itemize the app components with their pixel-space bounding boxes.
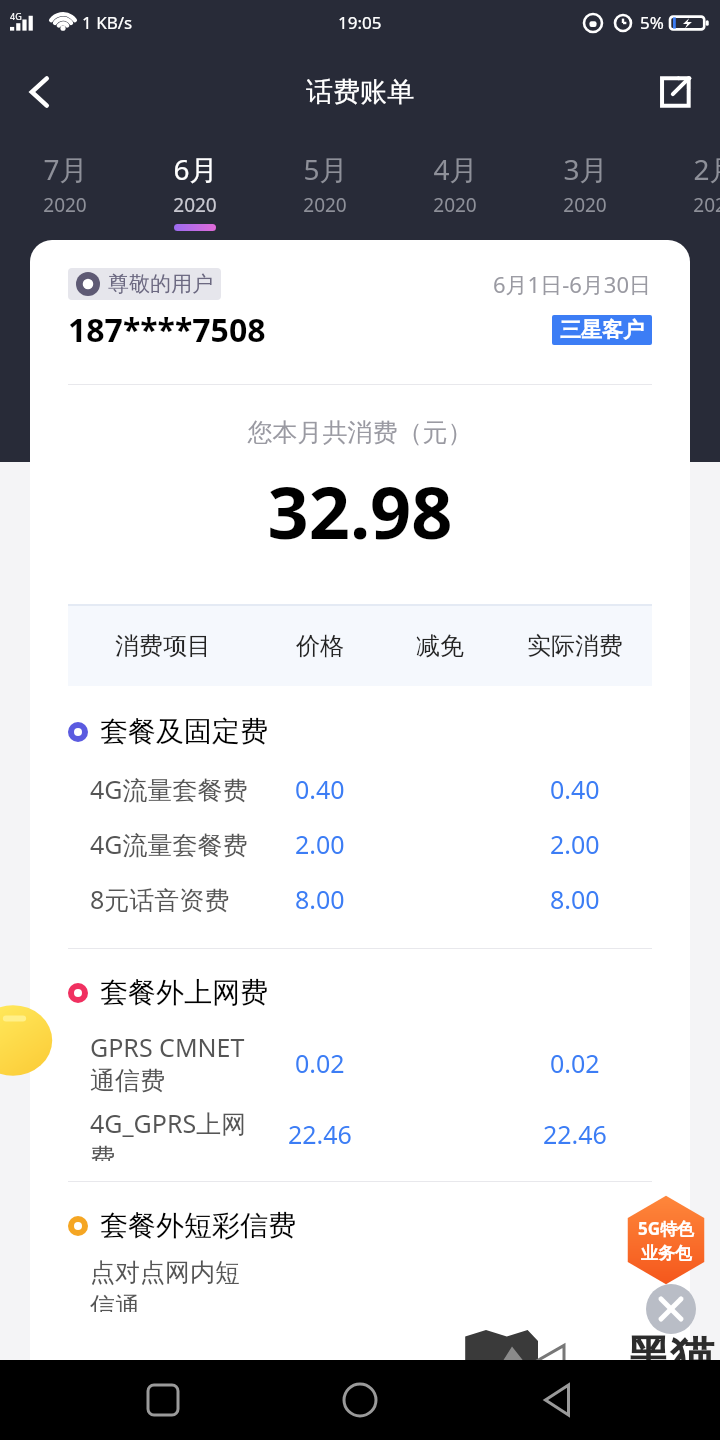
staticText: 0.40 — [295, 772, 345, 806]
staticText: 2020 — [693, 192, 720, 218]
button[interactable]: Share — [644, 61, 706, 123]
staticText: 6月 — [173, 150, 218, 188]
button[interactable]: 4G流量套餐费 — [68, 761, 652, 816]
staticText: GPRS CMNET通信费 — [90, 1030, 258, 1097]
staticText: 19:05 — [338, 11, 382, 34]
staticText: 您本月共消费（元） — [30, 417, 690, 448]
button[interactable]: 7月 — [5, 140, 125, 240]
staticText: 点对点网内短信通 — [90, 1257, 258, 1312]
staticText: 2.00 — [295, 827, 345, 861]
staticText: 2月 — [693, 150, 720, 188]
staticText: 业务包 — [641, 1243, 692, 1264]
button[interactable]: 8元话音资费 — [68, 871, 652, 926]
staticText: 消费项目 — [115, 631, 211, 661]
staticText: 0.40 — [550, 772, 600, 806]
staticText: 价格 — [296, 631, 344, 661]
button[interactable]: 6月 — [135, 140, 255, 240]
staticText: 套餐及固定费 — [100, 714, 268, 749]
button[interactable]: 套餐外上网费 — [68, 975, 652, 1010]
staticText: 4月 — [433, 150, 478, 188]
button[interactable]: GPRS CMNET通信费 — [68, 1020, 652, 1106]
staticText: 减免 — [416, 631, 464, 661]
staticText: 实际消费 — [527, 631, 623, 661]
button[interactable]: 4月 — [395, 140, 515, 240]
staticText: 22.46 — [288, 1117, 352, 1151]
staticText: 三星客户 — [560, 317, 644, 343]
staticText: 6月1日-6月30日 — [493, 269, 652, 299]
staticText: 2020 — [173, 192, 217, 218]
button[interactable]: Home — [325, 1365, 395, 1435]
button[interactable]: 点对点网内短信通 — [68, 1257, 652, 1312]
staticText: 7月 — [43, 150, 88, 188]
staticText: 5月 — [303, 150, 348, 188]
staticText: 0.02 — [295, 1046, 345, 1080]
staticText: 22.46 — [543, 1117, 607, 1151]
staticText: 套餐外短彩信费 — [100, 1208, 296, 1243]
staticText: 黑猫 — [626, 1330, 714, 1385]
staticText: 8.00 — [550, 882, 600, 916]
button[interactable]: 2月 — [655, 140, 720, 240]
staticText: 2020 — [563, 192, 607, 218]
button[interactable]: 套餐及固定费 — [68, 714, 652, 749]
staticText: 8.00 — [295, 882, 345, 916]
button[interactable]: 套餐外短彩信费 — [68, 1208, 652, 1243]
button[interactable]: 5G package promotion — [618, 1190, 714, 1290]
staticText: 4G流量套餐费 — [90, 772, 248, 806]
staticText: 32.98 — [30, 462, 690, 560]
staticText: 4G流量套餐费 — [90, 827, 248, 861]
staticText: 0.02 — [550, 1046, 600, 1080]
button[interactable]: Savings — [0, 1000, 58, 1086]
button[interactable]: 三星客户 — [560, 317, 644, 343]
staticText: 尊敬的用户 — [108, 271, 213, 297]
button[interactable]: 4G流量套餐费 — [68, 816, 652, 871]
button[interactable]: 5月 — [265, 140, 385, 240]
staticText: 套餐外上网费 — [100, 975, 268, 1010]
staticText: 187****7508 — [68, 308, 266, 352]
button[interactable]: 3月 — [525, 140, 645, 240]
staticText: 4G — [10, 10, 22, 22]
staticText: 1 KB/s — [82, 11, 133, 34]
staticText: 2020 — [43, 192, 87, 218]
button[interactable]: Back — [523, 1365, 593, 1435]
staticText: 4G_GPRS上网费 — [90, 1106, 258, 1161]
staticText: 话费账单 — [306, 75, 414, 109]
staticText: 3月 — [563, 150, 608, 188]
staticText: 2.00 — [550, 827, 600, 861]
staticText: 2020 — [303, 192, 347, 218]
button[interactable]: 4G_GPRS上网费 — [68, 1106, 652, 1161]
staticText: 5% — [640, 11, 664, 34]
button[interactable]: Close — [646, 1284, 696, 1334]
staticText: 2020 — [433, 192, 477, 218]
staticText: 8元话音资费 — [90, 882, 230, 916]
button[interactable]: Recent apps — [128, 1365, 198, 1435]
staticText: 5G特色 — [638, 1217, 695, 1240]
button[interactable]: Back — [8, 60, 72, 124]
